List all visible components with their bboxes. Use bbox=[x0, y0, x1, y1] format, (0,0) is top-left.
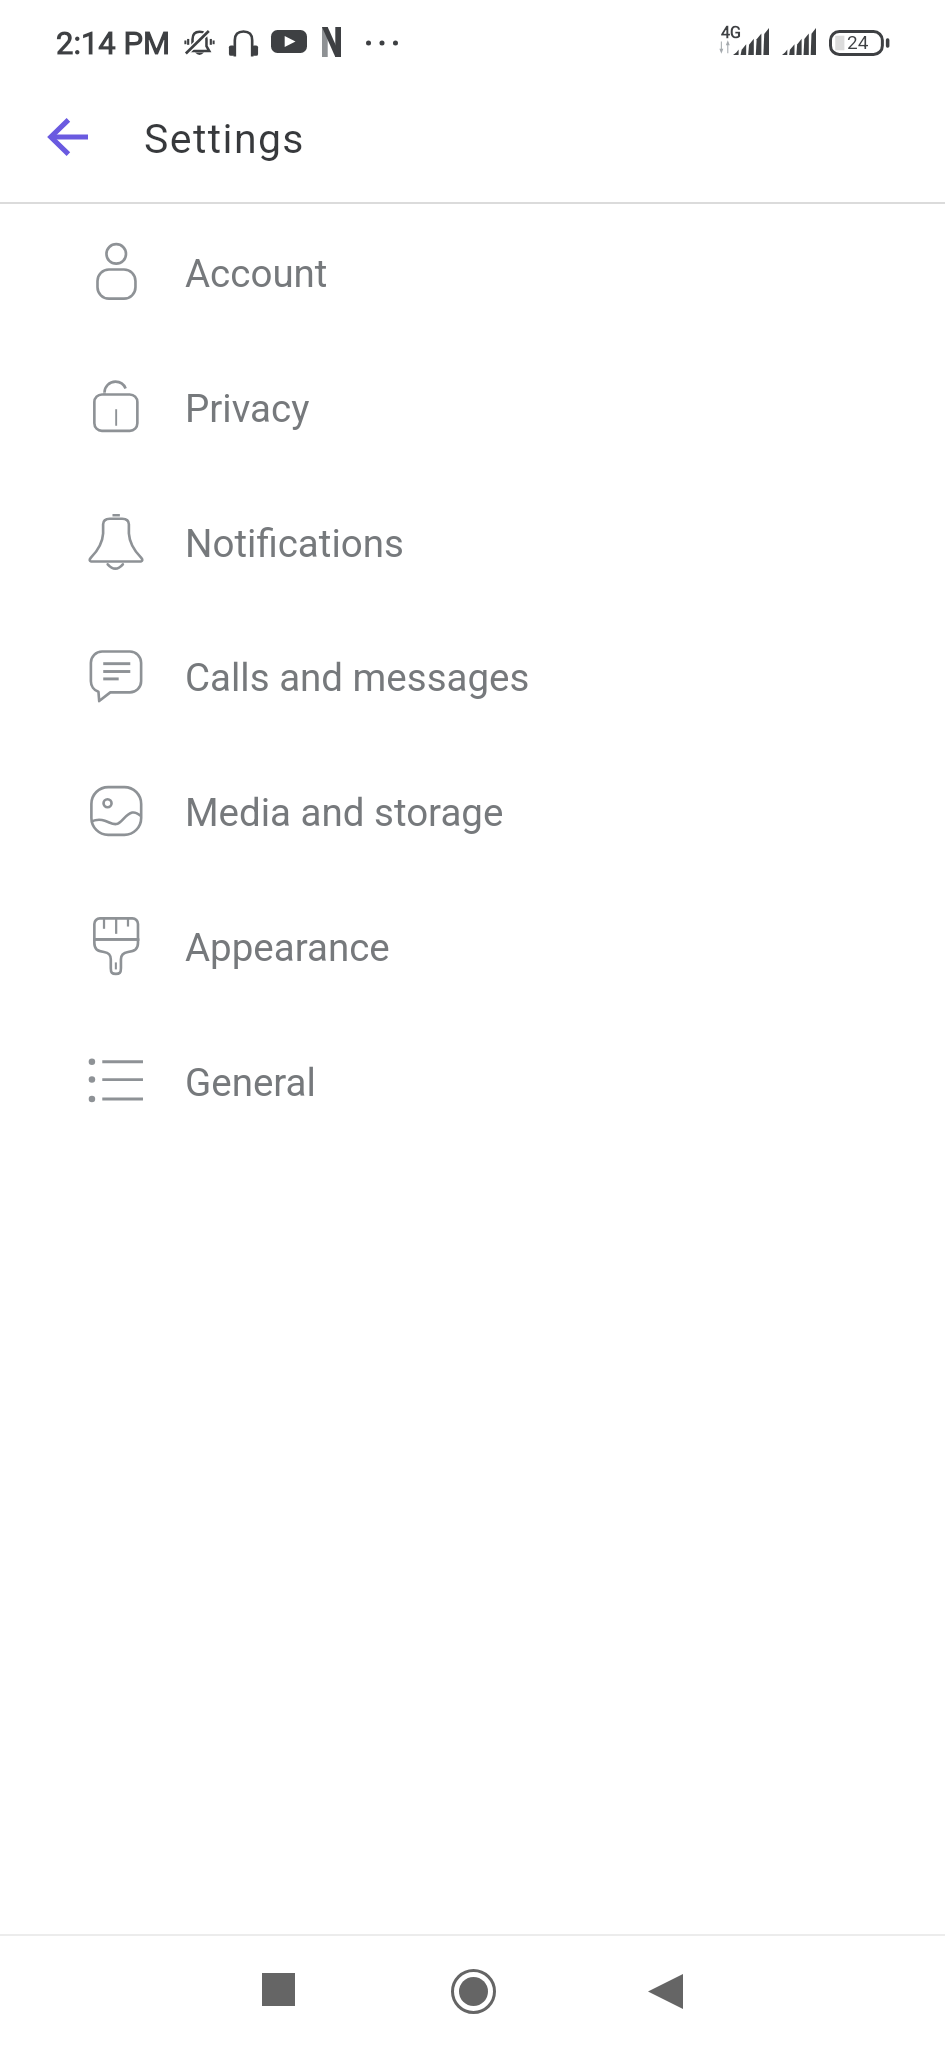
staticText: Privacy bbox=[185, 386, 310, 431]
staticText: Account bbox=[185, 251, 328, 296]
staticText: Appearance bbox=[185, 925, 390, 970]
button[interactable]: Account bbox=[0, 206, 945, 340]
staticText: 4G bbox=[721, 23, 741, 42]
button[interactable]: Calls and messages bbox=[0, 610, 945, 744]
button[interactable]: General bbox=[0, 1015, 945, 1149]
staticText: 2:14 PM bbox=[56, 25, 171, 61]
button[interactable]: Back bbox=[26, 96, 110, 180]
button[interactable]: Recents bbox=[228, 1939, 328, 2039]
button[interactable]: Notifications bbox=[0, 476, 945, 610]
staticText: Notifications bbox=[185, 521, 404, 566]
staticText: Media and storage bbox=[185, 790, 504, 835]
button[interactable]: Home bbox=[423, 1941, 523, 2041]
button[interactable]: Appearance bbox=[0, 880, 945, 1014]
button[interactable]: Media and storage bbox=[0, 745, 945, 879]
button[interactable]: Back bbox=[615, 1941, 715, 2041]
staticText: Settings bbox=[144, 115, 305, 163]
staticText: 24 bbox=[847, 31, 869, 53]
staticText: Calls and messages bbox=[185, 655, 530, 700]
staticText: General bbox=[185, 1060, 316, 1105]
button[interactable]: Privacy bbox=[0, 341, 945, 475]
